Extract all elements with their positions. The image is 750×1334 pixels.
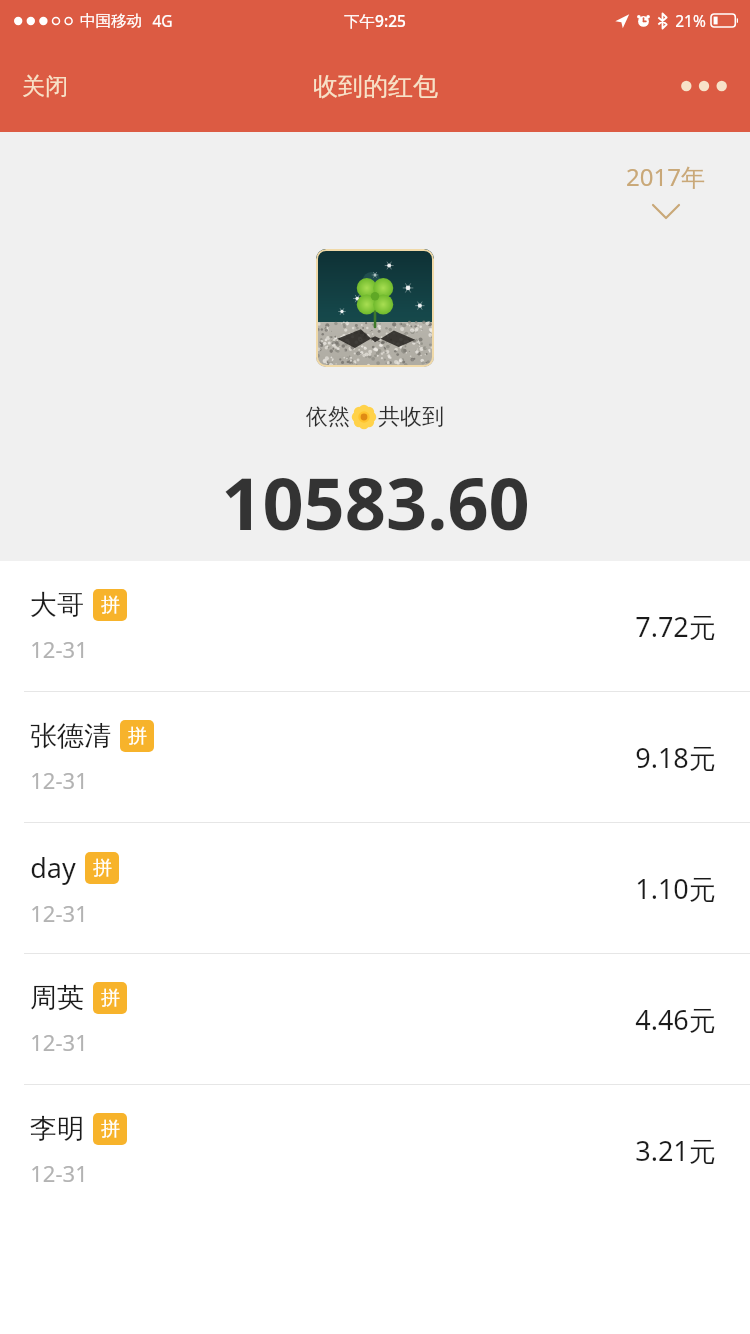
button[interactable]: 大哥 bbox=[0, 561, 750, 691]
button[interactable]: 2017年 bbox=[626, 160, 705, 218]
staticText: 3.21元 bbox=[635, 1132, 716, 1169]
staticText: 拼 bbox=[101, 593, 120, 617]
staticText: 拼 bbox=[93, 856, 112, 880]
staticText: 7.72元 bbox=[635, 608, 716, 645]
staticText: 共收到 bbox=[378, 403, 444, 431]
staticText: 张德清 bbox=[30, 719, 111, 753]
button[interactable]: 周英 bbox=[0, 954, 750, 1084]
staticText: 12-31 bbox=[30, 898, 88, 928]
staticText: day bbox=[30, 849, 76, 886]
staticText: 拼 bbox=[101, 1117, 120, 1141]
staticText: 12-31 bbox=[30, 1158, 88, 1188]
staticText: 4.46元 bbox=[635, 1001, 716, 1038]
staticText: 依然 bbox=[306, 403, 350, 431]
button[interactable]: 关闭 bbox=[0, 58, 90, 115]
staticText: 12-31 bbox=[30, 634, 88, 664]
staticText: 下午9:25 bbox=[344, 10, 406, 31]
staticText: 1.10元 bbox=[635, 870, 716, 907]
staticText: 21% bbox=[675, 10, 706, 31]
button[interactable]: day bbox=[0, 823, 750, 953]
button[interactable]: More options bbox=[658, 64, 750, 108]
staticText: 拼 bbox=[101, 986, 120, 1010]
staticText: 大哥 bbox=[30, 588, 84, 622]
button[interactable]: 李明 bbox=[0, 1085, 750, 1215]
staticText: 12-31 bbox=[30, 1027, 88, 1057]
staticText: 中国移动 bbox=[80, 11, 142, 31]
staticText: 周英 bbox=[30, 981, 84, 1015]
staticText: 10583.60 bbox=[221, 453, 530, 551]
staticText: 4G bbox=[152, 10, 173, 31]
staticText: 收到的红包 bbox=[313, 71, 438, 102]
button[interactable]: 张德清 bbox=[0, 692, 750, 822]
staticText: 拼 bbox=[128, 724, 147, 748]
staticText: 李明 bbox=[30, 1112, 84, 1146]
button[interactable]: Profile avatar bbox=[316, 249, 434, 367]
staticText: 12-31 bbox=[30, 765, 88, 795]
staticText: 关闭 bbox=[22, 72, 68, 101]
staticText: 9.18元 bbox=[635, 739, 716, 776]
staticText: 2017年 bbox=[626, 160, 705, 193]
